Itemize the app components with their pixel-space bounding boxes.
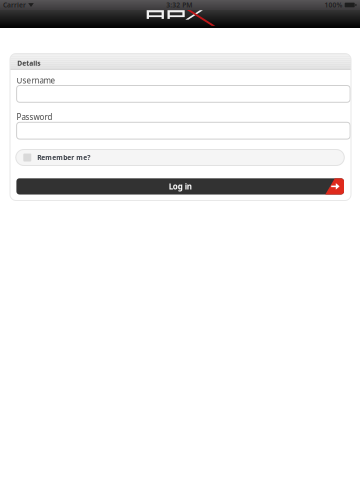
staticText: Username [17, 75, 56, 86]
button[interactable]: Log in [16, 178, 344, 194]
staticText: Password [17, 112, 53, 122]
staticText: Details [17, 59, 40, 68]
staticText: 3:32 PM [166, 1, 192, 9]
staticText: Log in [169, 181, 192, 192]
staticText: Remember me? [37, 153, 90, 162]
button[interactable]: Remember me? [16, 149, 344, 165]
staticText: 100% [324, 1, 342, 9]
staticText: Carrier [3, 1, 26, 9]
